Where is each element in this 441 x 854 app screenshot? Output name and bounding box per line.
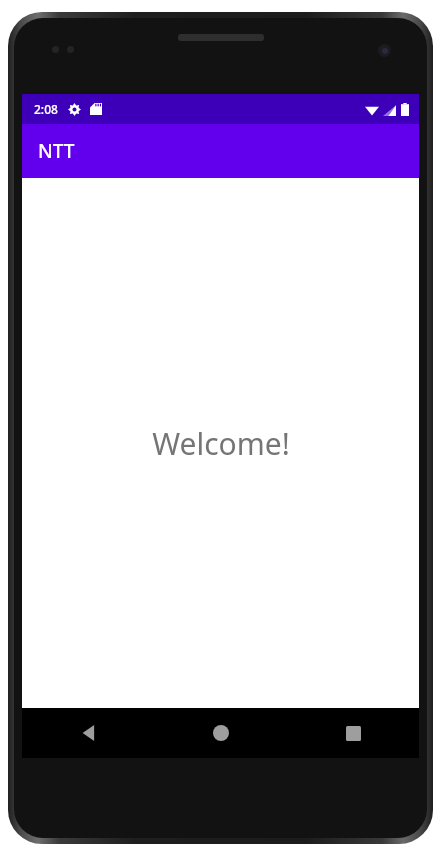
other: SD card [90,103,102,115]
staticText: 2:08 [34,101,58,117]
button[interactable]: Back [22,708,155,758]
button[interactable]: NTT [22,124,419,178]
other: Settings [68,103,81,116]
other: Wi-Fi [365,104,379,116]
staticText: NTT [38,138,75,164]
button[interactable]: Home [155,708,287,758]
staticText: Welcome! [152,423,290,464]
button[interactable]: Recent apps [287,708,419,758]
other: Battery [401,103,409,116]
other: Mobile signal [383,104,396,116]
